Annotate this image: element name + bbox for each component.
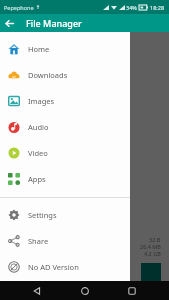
staticText: Exit — [28, 288, 41, 298]
staticText: 26.4 MB — [140, 243, 161, 250]
staticText: 18:28 — [150, 4, 165, 11]
staticText: File Manager — [26, 17, 82, 29]
staticText: No AD Version — [28, 262, 79, 272]
staticText: 241 — [34, 126, 44, 133]
button[interactable]: Settings — [0, 204, 130, 226]
button[interactable]: Share — [0, 230, 130, 252]
staticText: 32 B — [149, 236, 161, 243]
button[interactable]: Downloads — [0, 64, 130, 86]
staticText: Images — [28, 96, 55, 106]
button[interactable]: Add — [141, 263, 161, 282]
button[interactable]: Video — [0, 142, 130, 164]
staticText: 34% — [126, 4, 137, 11]
staticText: Settings — [28, 210, 57, 220]
button[interactable]: Home — [75, 281, 95, 300]
staticText: Home — [28, 44, 50, 54]
button[interactable]: Home — [0, 38, 130, 60]
staticText: 4.2 GB — [144, 250, 161, 257]
button[interactable]: No AD Version — [0, 256, 130, 278]
staticText: Downloads — [28, 70, 68, 80]
staticText: Apps — [28, 174, 46, 184]
button[interactable]: Back — [0, 14, 18, 32]
staticText: Audio — [28, 122, 49, 132]
button[interactable]: Back — [27, 281, 47, 300]
button[interactable]: Audio — [0, 116, 130, 138]
staticText: Video — [28, 148, 48, 158]
staticText: Share — [28, 236, 49, 246]
button[interactable]: Images — [0, 90, 130, 112]
staticText: Downloads — [34, 116, 71, 126]
button[interactable]: Apps — [0, 168, 130, 190]
button[interactable]: Exit — [0, 282, 130, 300]
staticText: Pepephone — [4, 4, 34, 11]
button[interactable]: Recent apps — [122, 281, 142, 300]
